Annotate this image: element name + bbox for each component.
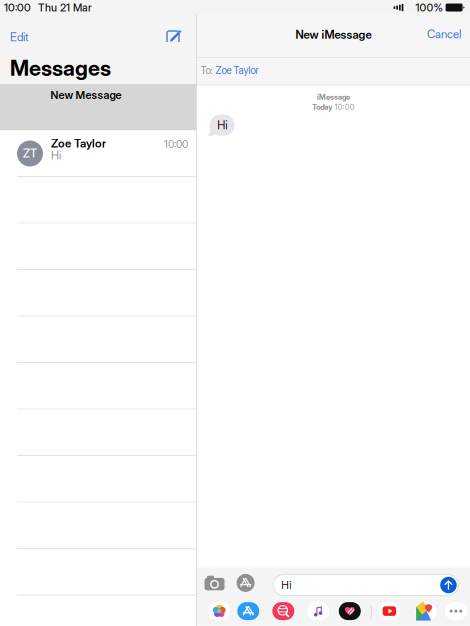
staticText: iMessage (317, 93, 350, 102)
button[interactable]: Send (440, 577, 457, 593)
button[interactable]: Images (272, 602, 294, 620)
staticText: 100% (415, 1, 442, 14)
staticText: Hi (281, 578, 291, 591)
staticText: Edit (10, 30, 29, 44)
staticText: 10:00 (164, 138, 188, 150)
staticText: Zoe Taylor (215, 64, 258, 76)
staticText: ZT (23, 147, 37, 160)
staticText: Today (312, 103, 332, 112)
staticText: Zoe Taylor (51, 136, 106, 150)
button[interactable]: Music (307, 602, 329, 620)
button[interactable]: Camera (202, 572, 226, 594)
button[interactable]: Maps (415, 602, 437, 620)
button[interactable]: Photos (208, 602, 230, 620)
staticText: Messages (10, 55, 111, 81)
staticText: New iMessage (295, 28, 371, 41)
button[interactable]: Edit (0, 24, 52, 50)
button[interactable]: ZT (0, 130, 196, 177)
button[interactable]: New Message (0, 84, 196, 130)
button[interactable]: YouTube (378, 602, 400, 620)
button[interactable]: Digital Touch (339, 602, 361, 620)
staticText: 10:00 (335, 103, 355, 112)
staticText: 10:00 (4, 1, 31, 14)
button[interactable]: More (445, 602, 467, 620)
button[interactable]: App Store (235, 572, 257, 594)
staticText: Thu 21 Mar (38, 1, 92, 14)
staticText: New Message (50, 88, 121, 102)
staticText: To: (200, 64, 212, 76)
staticText: Hi (217, 118, 227, 132)
button[interactable]: App Store (237, 602, 259, 620)
button[interactable]: Cancel (407, 22, 470, 46)
staticText: Cancel (427, 27, 461, 41)
staticText: Hi (51, 149, 61, 162)
button[interactable]: New message (158, 23, 192, 49)
